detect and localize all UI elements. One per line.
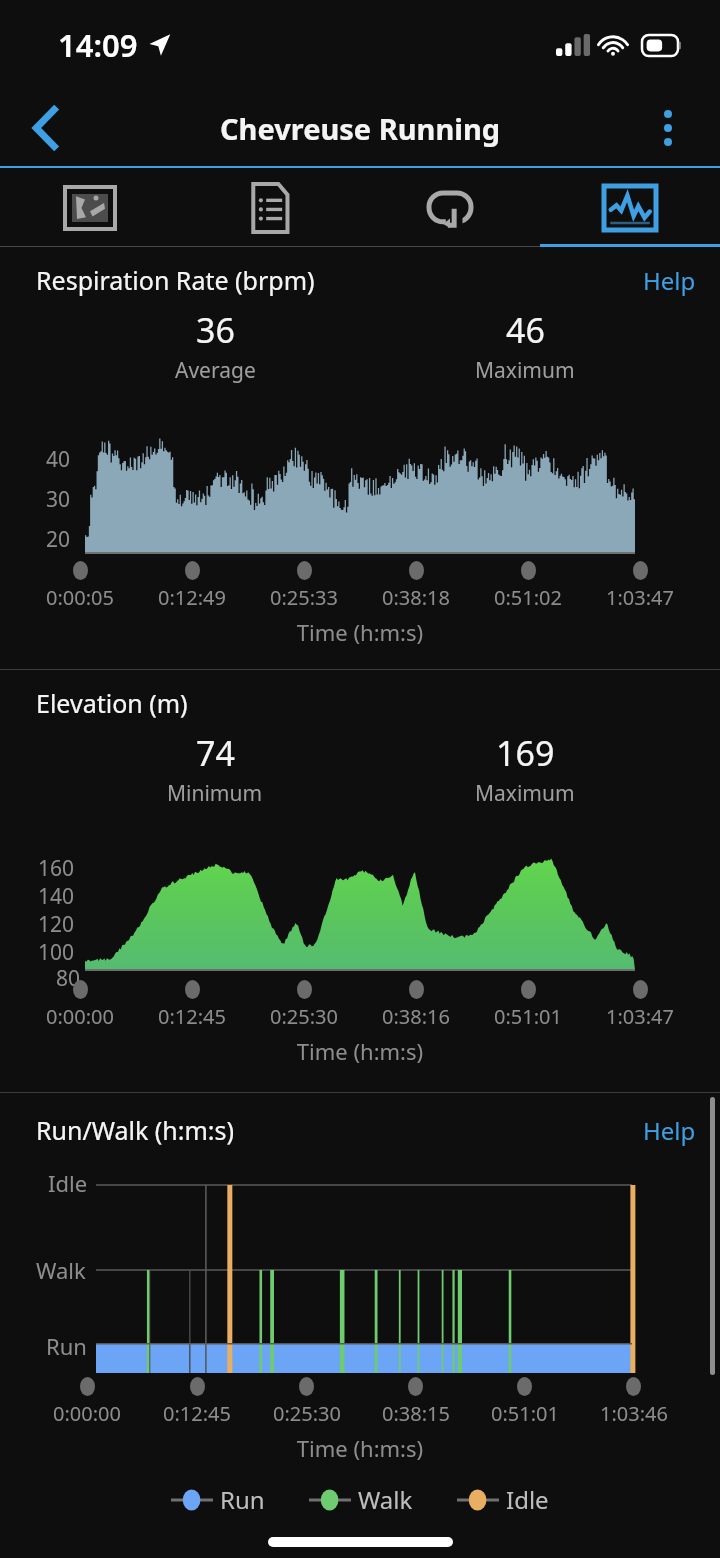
staticText: 46 (506, 307, 545, 353)
staticText: Run (220, 1483, 265, 1516)
staticText: 0:25:30 (273, 1400, 341, 1427)
staticText: 169 (496, 730, 555, 776)
button[interactable]: Back (16, 99, 74, 157)
staticText: Respiration Rate (brpm) (36, 263, 315, 297)
staticText: 1:03:47 (606, 1003, 674, 1030)
staticText: 0:00:05 (46, 584, 114, 611)
staticText: Walk (36, 1255, 86, 1285)
button[interactable]: Laps (360, 168, 540, 247)
staticText: Time (h:m:s) (0, 1036, 720, 1066)
staticText: 14:09 (58, 24, 138, 66)
staticText: 30 (46, 485, 71, 514)
staticText: 100 (38, 938, 75, 967)
staticText: 1:03:46 (600, 1400, 668, 1427)
staticText: 0:51:01 (494, 1003, 562, 1030)
staticText: 0:38:18 (382, 584, 450, 611)
staticText: Maximum (475, 356, 575, 385)
staticText: Run/Walk (h:m:s) (36, 1113, 235, 1147)
staticText: Elevation (m) (36, 686, 188, 720)
staticText: Walk (358, 1483, 413, 1516)
staticText: 0:38:16 (382, 1003, 450, 1030)
staticText: 0:25:30 (270, 1003, 338, 1030)
staticText: Maximum (475, 779, 575, 808)
staticText: 0:12:49 (158, 584, 226, 611)
staticText: Idle (506, 1483, 549, 1516)
staticText: 0:12:45 (158, 1003, 226, 1030)
staticText: 140 (38, 882, 75, 911)
staticText: 0:00:00 (46, 1003, 114, 1030)
staticText: Time (h:m:s) (0, 1433, 720, 1463)
button[interactable]: Details (180, 168, 360, 247)
staticText: 0:38:15 (382, 1400, 450, 1427)
staticText: Average (175, 356, 256, 385)
staticText: Help (643, 264, 696, 297)
button[interactable]: Map (0, 168, 180, 247)
button[interactable]: Help (639, 258, 700, 303)
button[interactable]: More options (640, 100, 696, 156)
staticText: 40 (46, 445, 71, 474)
staticText: Minimum (167, 779, 263, 808)
staticText: Help (643, 1114, 696, 1147)
button[interactable]: Help (639, 1108, 700, 1153)
staticText: 0:51:02 (494, 584, 562, 611)
staticText: 80 (56, 964, 81, 993)
staticText: Time (h:m:s) (0, 617, 720, 647)
staticText: 120 (38, 910, 75, 939)
staticText: Idle (48, 1168, 88, 1198)
staticText: 0:51:01 (491, 1400, 559, 1427)
staticText: 20 (46, 525, 71, 554)
staticText: 36 (196, 307, 235, 353)
staticText: 160 (38, 854, 75, 883)
staticText: 0:25:33 (270, 584, 338, 611)
staticText: 0:12:45 (163, 1400, 231, 1427)
staticText: 0:00:00 (53, 1400, 121, 1427)
staticText: 1:03:47 (606, 584, 674, 611)
staticText: Chevreuse Running (220, 109, 501, 148)
staticText: 74 (196, 730, 235, 776)
staticText: Run (46, 1331, 87, 1361)
button[interactable]: Charts (540, 168, 720, 247)
